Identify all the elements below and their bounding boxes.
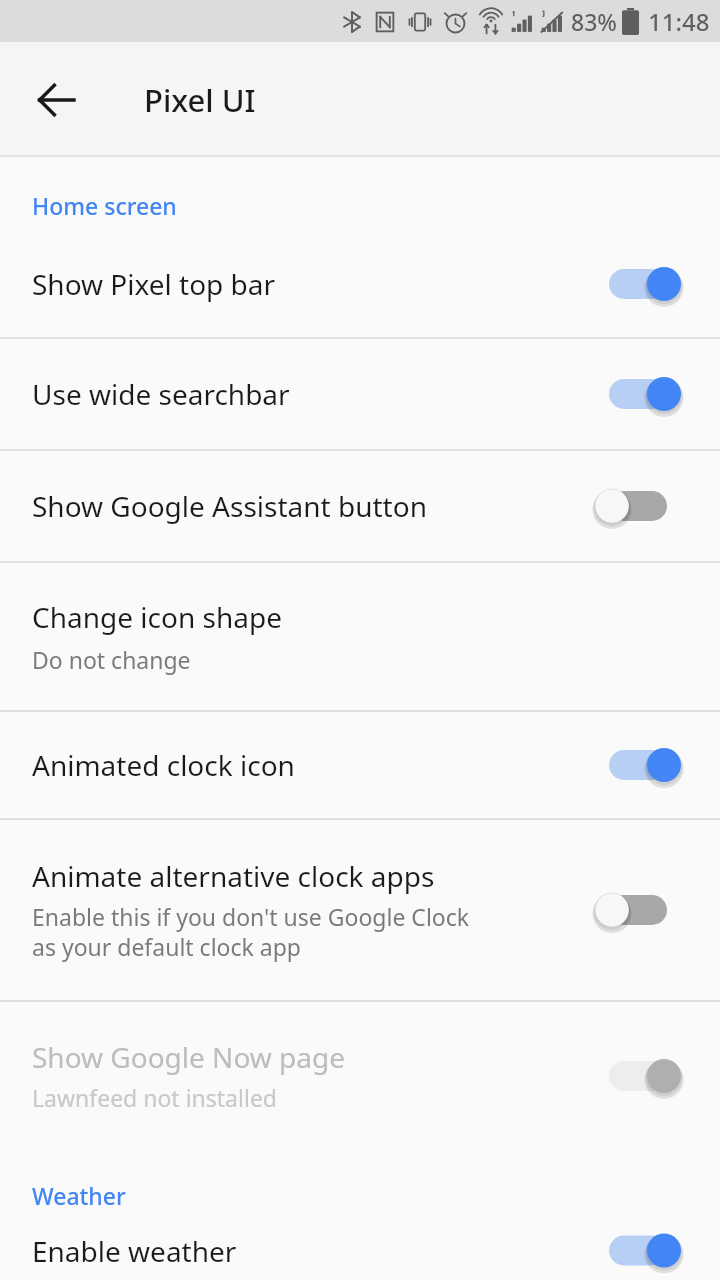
staticText: Animate alternative clock apps — [32, 857, 435, 895]
staticText: Enable this if you don't use Google Cloc… — [32, 901, 470, 963]
button: Show Google Now page — [0, 1002, 720, 1149]
staticText: Enable weather — [32, 1232, 237, 1270]
button[interactable]: Animated clock icon — [0, 712, 720, 818]
staticText: Change icon shape — [32, 598, 282, 636]
button[interactable]: Show Pixel top bar — [0, 231, 720, 337]
staticText: Do not change — [32, 644, 191, 675]
staticText: Show Google Assistant button — [32, 487, 427, 525]
button[interactable]: Use wide searchbar — [0, 339, 720, 449]
staticText: Show Pixel top bar — [32, 265, 276, 303]
button[interactable]: Show Google Assistant button — [0, 451, 720, 561]
staticText: 83% — [571, 6, 617, 37]
staticText: Lawnfeed not installed — [32, 1082, 277, 1113]
staticText: Use wide searchbar — [32, 375, 290, 413]
staticText: Pixel UI — [144, 79, 256, 121]
button[interactable]: Change icon shape — [0, 563, 720, 710]
button[interactable]: Animate alternative clock apps — [0, 820, 720, 1000]
button[interactable]: Enable weather — [0, 1221, 720, 1280]
staticText: Home screen — [32, 190, 177, 221]
button[interactable]: Back — [22, 66, 90, 134]
staticText: Show Google Now page — [32, 1038, 346, 1076]
staticText: Weather — [32, 1180, 126, 1211]
staticText: 11:48 — [648, 5, 710, 38]
staticText: Animated clock icon — [32, 746, 295, 784]
